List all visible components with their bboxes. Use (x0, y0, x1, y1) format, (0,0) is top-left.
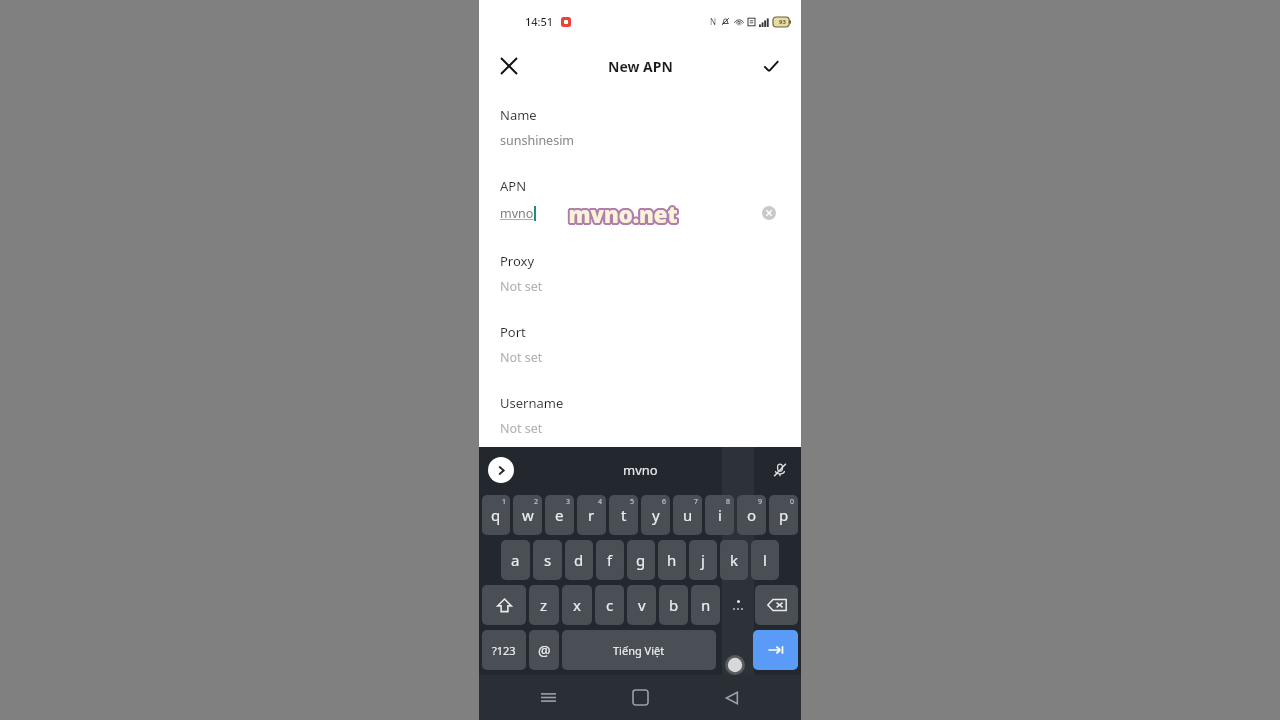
staticText: N (710, 16, 717, 27)
button[interactable]: Save (755, 50, 787, 82)
button[interactable]: Close (493, 50, 525, 82)
staticText: y (652, 505, 660, 525)
staticText: mvno.net (567, 199, 677, 229)
staticText: Proxy (500, 252, 535, 270)
staticText: Username (500, 394, 564, 412)
staticText: APN (500, 177, 527, 195)
staticText: w (522, 505, 534, 525)
staticText: 1 (502, 497, 507, 507)
staticText: Port (500, 323, 526, 341)
button[interactable]: APN (479, 177, 801, 252)
button[interactable]: Home (617, 675, 663, 720)
button[interactable]: r (577, 495, 606, 535)
staticText: p (779, 505, 789, 525)
button[interactable]: Tiếng Việt (562, 630, 716, 670)
staticText: v (638, 595, 646, 615)
button[interactable]: ?123 (482, 630, 526, 670)
staticText: e (555, 505, 564, 525)
staticText: 93 (779, 18, 786, 26)
button[interactable]: Voice input off (768, 458, 792, 482)
staticText: mvno.net (566, 200, 676, 230)
button[interactable]: v (627, 585, 656, 625)
staticText: mvno (500, 205, 534, 222)
staticText: 8 (726, 497, 731, 507)
button[interactable]: Proxy (479, 252, 801, 323)
staticText: 2 (534, 497, 539, 507)
staticText: r (588, 505, 595, 525)
staticText: New APN (608, 57, 673, 76)
button[interactable]: w (513, 495, 542, 535)
button[interactable]: Port (479, 323, 801, 394)
staticText: j (701, 550, 705, 570)
staticText: mvno.net (569, 197, 679, 227)
staticText: Name (500, 106, 537, 124)
staticText: mvno.net (567, 198, 677, 228)
button[interactable]: More symbols (723, 585, 752, 625)
staticText: mvno.net (569, 198, 679, 228)
button[interactable]: Name (479, 106, 801, 177)
staticText: mvno.net (568, 197, 678, 227)
button[interactable]: p (769, 495, 798, 535)
button[interactable]: t (609, 495, 638, 535)
staticText: Tiếng Việt (613, 643, 665, 658)
staticText: mvno.net (567, 197, 677, 227)
button[interactable]: d (565, 540, 593, 580)
button[interactable]: k (720, 540, 748, 580)
staticText: @ (538, 641, 551, 660)
staticText: 0 (790, 497, 795, 507)
button[interactable]: h (658, 540, 686, 580)
button[interactable]: a (501, 540, 530, 580)
button[interactable]: Clear text (758, 202, 780, 224)
button[interactable]: e (545, 495, 574, 535)
staticText: 5 (630, 497, 635, 507)
button[interactable]: Backspace (755, 585, 798, 625)
staticText: 14:51 (525, 14, 554, 29)
staticText: n (701, 595, 711, 615)
button[interactable]: u (673, 495, 702, 535)
staticText: x (573, 595, 581, 615)
button[interactable]: g (627, 540, 655, 580)
staticText: 7 (694, 497, 699, 507)
button[interactable]: Shift (482, 585, 526, 625)
button[interactable]: Expand toolbar (488, 457, 514, 483)
staticText: z (540, 595, 548, 615)
staticText: mvno.net (570, 200, 680, 230)
staticText: a (511, 550, 520, 570)
button[interactable]: f (596, 540, 624, 580)
staticText: h (667, 550, 677, 570)
button[interactable]: n (691, 585, 720, 625)
staticText: mvno.net (567, 201, 677, 231)
staticText: mvno.net (570, 198, 680, 228)
staticText: Not set (500, 349, 543, 366)
button[interactable]: b (659, 585, 688, 625)
staticText: Not set (500, 278, 543, 295)
button[interactable]: c (595, 585, 624, 625)
staticText: 6 (662, 497, 667, 507)
staticText: mvno (623, 461, 658, 479)
button[interactable]: j (689, 540, 717, 580)
staticText: c (606, 595, 614, 615)
button[interactable]: x (562, 585, 592, 625)
button[interactable]: l (751, 540, 779, 580)
button[interactable]: Back (709, 675, 755, 720)
button[interactable]: Username (479, 394, 801, 465)
button[interactable]: Recents (525, 675, 571, 720)
button[interactable]: q (482, 495, 510, 535)
staticText: ?123 (492, 643, 516, 658)
staticText: mvno.net (567, 200, 677, 230)
button[interactable]: z (529, 585, 559, 625)
staticText: mvno.net (568, 200, 678, 230)
button[interactable]: @ (529, 630, 559, 670)
staticText: mvno.net (568, 199, 678, 229)
staticText: 3 (566, 497, 571, 507)
button[interactable]: y (641, 495, 670, 535)
button[interactable]: o (737, 495, 766, 535)
staticText: 9 (758, 497, 763, 507)
staticText: mvno.net (570, 199, 680, 229)
staticText: t (621, 505, 627, 525)
button[interactable]: Next field (753, 630, 798, 670)
button[interactable]: i (705, 495, 734, 535)
button[interactable]: s (533, 540, 562, 580)
staticText: o (747, 505, 757, 525)
staticText: q (491, 505, 501, 525)
